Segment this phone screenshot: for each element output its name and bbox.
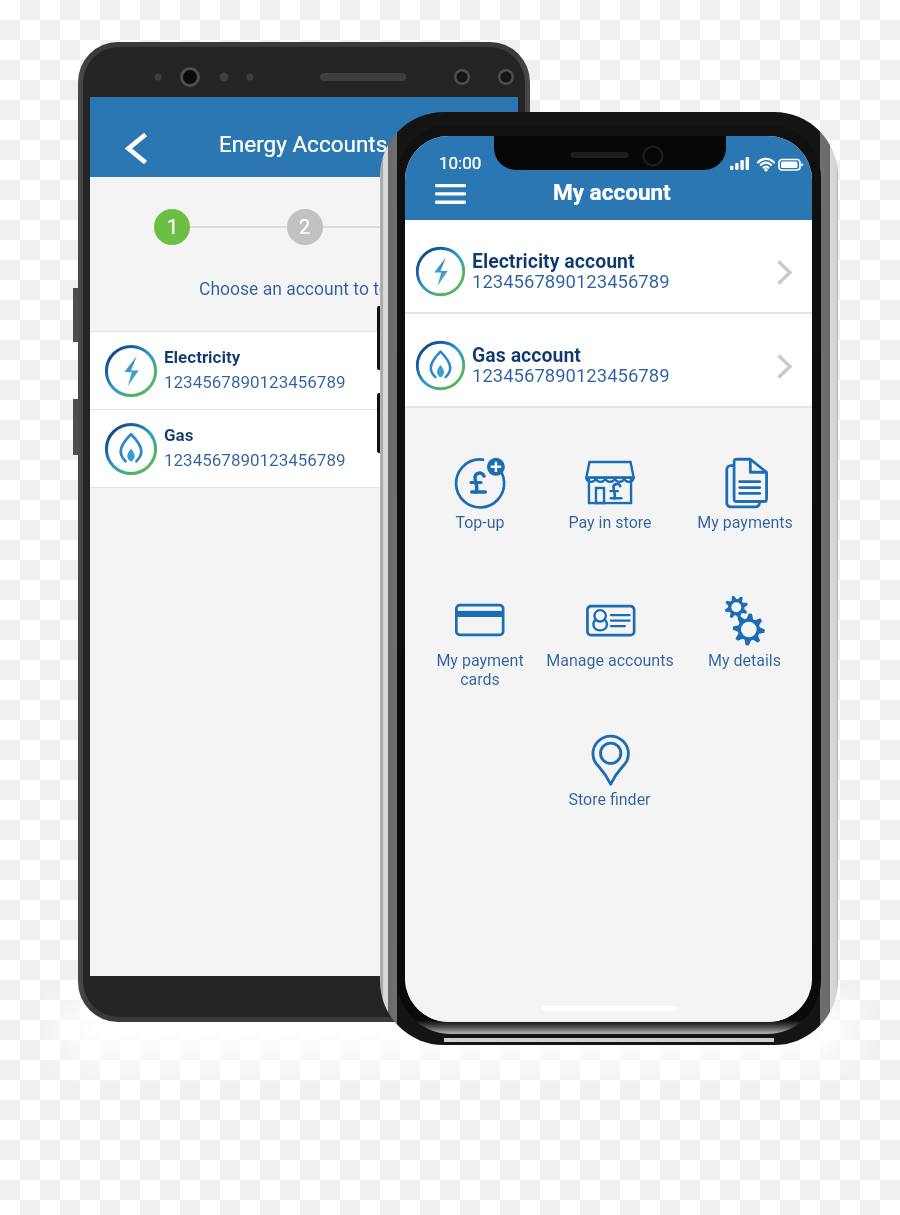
staticText: Store finder: [568, 790, 651, 809]
staticText: Top-up: [455, 513, 505, 532]
button[interactable]: My payments: [672, 456, 812, 552]
staticText: My payments: [697, 513, 793, 532]
staticText: Choose an account to top up: [199, 279, 423, 300]
button[interactable]: Pay in store: [537, 456, 682, 552]
staticText: Electricity: [164, 347, 241, 367]
staticText: Energy Accounts: [219, 131, 388, 157]
staticText: Gas: [164, 425, 194, 445]
staticText: Electricity account: [472, 250, 635, 273]
staticText: 1234567890123456789: [164, 372, 346, 392]
button[interactable]: Electricity: [90, 332, 518, 409]
staticText: My details: [708, 651, 781, 670]
button[interactable]: Top-up: [407, 456, 552, 552]
button[interactable]: Gas: [90, 410, 518, 487]
staticText: 1: [167, 215, 179, 238]
staticText: 1234567890123456789: [472, 271, 670, 293]
button[interactable]: Back: [114, 124, 160, 172]
staticText: My payment cards: [436, 651, 524, 689]
button[interactable]: Gas account: [405, 314, 812, 406]
staticText: Gas account: [472, 344, 581, 367]
button[interactable]: Store finder: [537, 733, 682, 829]
staticText: 1234567890123456789: [164, 450, 346, 470]
staticText: Manage accounts: [546, 651, 674, 670]
staticText: 10:00: [439, 153, 482, 173]
button[interactable]: Manage accounts: [537, 594, 682, 690]
staticText: 1234567890123456789: [472, 365, 670, 387]
button[interactable]: Electricity account: [405, 220, 812, 312]
button[interactable]: Menu: [422, 176, 478, 212]
staticText: 2: [299, 215, 311, 238]
staticText: My account: [553, 179, 671, 205]
button[interactable]: My payment cards: [407, 594, 552, 690]
button[interactable]: My details: [672, 594, 812, 690]
staticText: Pay in store: [568, 513, 652, 532]
